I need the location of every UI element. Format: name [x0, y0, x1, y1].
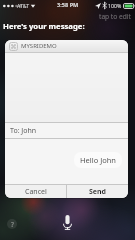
button[interactable]: Help [7, 219, 17, 229]
staticText: 3:58 PM [57, 1, 79, 9]
button[interactable]: Send [67, 185, 128, 198]
staticText: Send [89, 187, 107, 197]
staticText: MYSRIDEMO [21, 42, 57, 50]
button[interactable]: Microphone [55, 210, 79, 234]
staticText: Here's your message: [3, 21, 85, 31]
staticText: AT&T [17, 2, 30, 9]
staticText: Hello John [80, 155, 116, 165]
staticText: 100% [108, 2, 122, 9]
staticText: ? [11, 220, 14, 229]
staticText: tap to edit [99, 12, 131, 21]
button[interactable]: Cancel [5, 185, 66, 198]
staticText: To: John [10, 126, 37, 136]
staticText: Cancel [25, 187, 47, 197]
